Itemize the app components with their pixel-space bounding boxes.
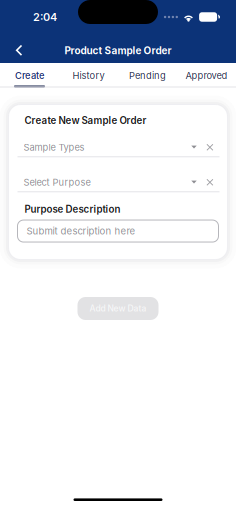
staticText: Product Sample Order bbox=[64, 44, 171, 57]
button[interactable]: Add New Data bbox=[77, 297, 158, 320]
staticText: Approved bbox=[185, 70, 227, 81]
button[interactable]: Select Purpose bbox=[17, 173, 219, 191]
button[interactable]: Back bbox=[9, 39, 29, 61]
button[interactable]: Sample Types bbox=[17, 138, 219, 156]
staticText: 2:04 bbox=[33, 10, 57, 24]
staticText: Sample Types bbox=[23, 142, 84, 153]
staticText: History bbox=[72, 70, 104, 81]
button[interactable]: Submit description here bbox=[17, 220, 218, 242]
staticText: Add New Data bbox=[89, 303, 146, 314]
staticText: Create bbox=[15, 70, 44, 81]
button[interactable]: History bbox=[59, 63, 118, 87]
button[interactable]: Create bbox=[0, 63, 59, 87]
staticText: Purpose Description bbox=[24, 203, 120, 215]
staticText: Select Purpose bbox=[23, 177, 90, 188]
staticText: Submit description here bbox=[26, 225, 135, 237]
button[interactable]: Pending bbox=[118, 63, 177, 87]
staticText: Create New Sample Order bbox=[24, 114, 146, 126]
button[interactable]: Approved bbox=[177, 63, 236, 87]
staticText: Pending bbox=[129, 70, 166, 81]
